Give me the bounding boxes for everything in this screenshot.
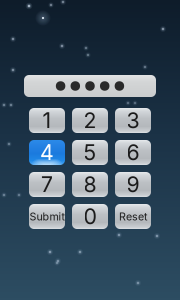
button[interactable]: Reset [115,204,151,229]
button[interactable]: 8 [72,172,108,197]
staticText: 3 [126,108,139,133]
button[interactable]: 1 [29,108,65,133]
button[interactable]: 4 [29,140,65,165]
staticText: 1 [42,108,51,133]
staticText: 7 [41,172,53,197]
staticText: 5 [83,140,96,165]
staticText: 9 [126,172,139,197]
button[interactable]: 9 [115,172,151,197]
staticText: 0 [83,204,96,229]
button[interactable]: 0 [72,204,108,229]
staticText: 4 [40,140,54,165]
button[interactable]: 3 [115,108,151,133]
staticText: Reset [119,210,147,223]
staticText: 8 [83,172,96,197]
button[interactable]: 7 [29,172,65,197]
button[interactable]: Submit [29,204,65,229]
staticText: 6 [126,140,139,165]
button[interactable]: 6 [115,140,151,165]
staticText: Submit [29,210,64,223]
button[interactable]: 2 [72,108,108,133]
staticText: 2 [83,108,96,133]
button[interactable]: 5 [72,140,108,165]
